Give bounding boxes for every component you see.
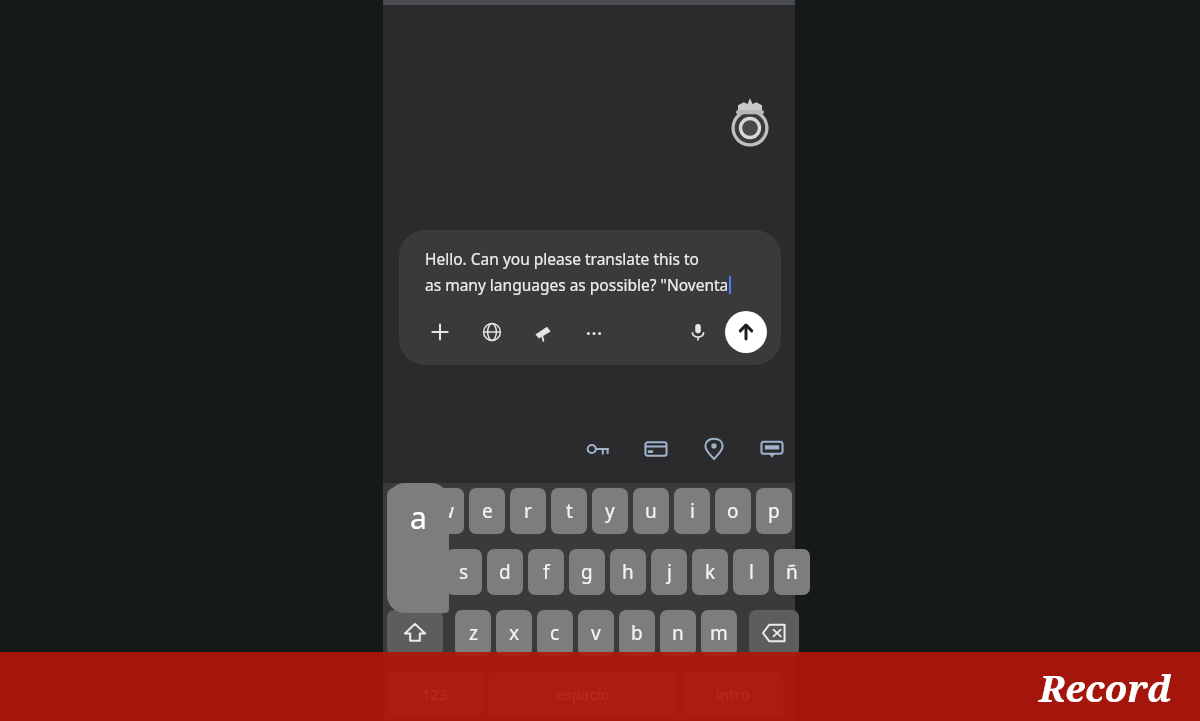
button[interactable]: Add attachment bbox=[425, 317, 455, 347]
staticText: i bbox=[690, 498, 695, 524]
button[interactable]: d bbox=[487, 549, 523, 595]
staticText: k bbox=[705, 559, 716, 585]
button[interactable]: Backspace bbox=[749, 610, 799, 656]
staticText: u bbox=[645, 498, 657, 524]
staticText: z bbox=[469, 620, 478, 646]
staticText: Hello. Can you please translate this to bbox=[425, 248, 699, 269]
staticText: y bbox=[605, 498, 615, 524]
staticText: espacio bbox=[556, 684, 610, 704]
button[interactable]: z bbox=[455, 610, 491, 656]
button[interactable]: Deep research bbox=[528, 317, 558, 347]
button[interactable]: u bbox=[633, 488, 669, 534]
button[interactable]: h bbox=[610, 549, 646, 595]
button[interactable]: q bbox=[387, 488, 423, 534]
button[interactable]: Voice input bbox=[683, 317, 713, 347]
button[interactable]: g bbox=[569, 549, 605, 595]
button[interactable]: c bbox=[537, 610, 573, 656]
staticText: a bbox=[410, 497, 427, 538]
button[interactable]: i bbox=[674, 488, 710, 534]
staticText: j bbox=[667, 559, 672, 585]
button[interactable]: t bbox=[551, 488, 587, 534]
button[interactable]: w bbox=[428, 488, 464, 534]
staticText: o bbox=[727, 498, 739, 524]
button[interactable]: f bbox=[528, 549, 564, 595]
staticText: w bbox=[439, 498, 454, 524]
button[interactable]: Send bbox=[725, 311, 767, 353]
staticText: l bbox=[749, 559, 754, 585]
staticText: f bbox=[543, 559, 550, 585]
button[interactable]: e bbox=[469, 488, 505, 534]
button[interactable]: j bbox=[651, 549, 687, 595]
button[interactable]: Hello. Can you please translate this to bbox=[399, 230, 781, 365]
staticText: intro bbox=[716, 684, 750, 704]
staticText: m bbox=[710, 620, 728, 646]
button[interactable]: More options bbox=[579, 317, 609, 347]
staticText: g bbox=[581, 559, 593, 585]
staticText: r bbox=[524, 498, 532, 524]
button[interactable]: Web search bbox=[477, 317, 507, 347]
button[interactable]: v bbox=[578, 610, 614, 656]
button[interactable]: x bbox=[496, 610, 532, 656]
button[interactable]: Shift bbox=[387, 610, 443, 656]
button[interactable]: r bbox=[510, 488, 546, 534]
staticText: 123 bbox=[422, 684, 448, 704]
staticText: ñ bbox=[786, 559, 798, 585]
button[interactable]: n bbox=[660, 610, 696, 656]
button[interactable]: b bbox=[619, 610, 655, 656]
button[interactable]: k bbox=[692, 549, 728, 595]
button[interactable]: o bbox=[715, 488, 751, 534]
button[interactable]: s bbox=[446, 549, 482, 595]
staticText: b bbox=[631, 620, 643, 646]
button[interactable]: y bbox=[592, 488, 628, 534]
staticText: n bbox=[672, 620, 684, 646]
button[interactable]: ñ bbox=[774, 549, 810, 595]
button[interactable]: m bbox=[701, 610, 737, 656]
staticText: as many languages as possible? "Noventa bbox=[425, 274, 729, 295]
staticText: t bbox=[566, 498, 573, 524]
button[interactable]: Other devices bbox=[753, 430, 791, 468]
staticText: s bbox=[459, 559, 469, 585]
staticText: e bbox=[482, 498, 493, 524]
staticText: p bbox=[768, 498, 780, 524]
button[interactable]: l bbox=[733, 549, 769, 595]
button[interactable]: Passwords bbox=[579, 430, 617, 468]
button[interactable]: Payment methods bbox=[637, 430, 675, 468]
staticText: Record bbox=[1039, 662, 1172, 712]
other: Real Madrid crest bbox=[720, 92, 780, 152]
staticText: c bbox=[550, 620, 560, 646]
staticText: h bbox=[622, 559, 634, 585]
button[interactable]: p bbox=[756, 488, 792, 534]
staticText: d bbox=[499, 559, 511, 585]
staticText: x bbox=[509, 620, 520, 646]
staticText: v bbox=[591, 620, 601, 646]
button[interactable]: Addresses bbox=[695, 430, 733, 468]
